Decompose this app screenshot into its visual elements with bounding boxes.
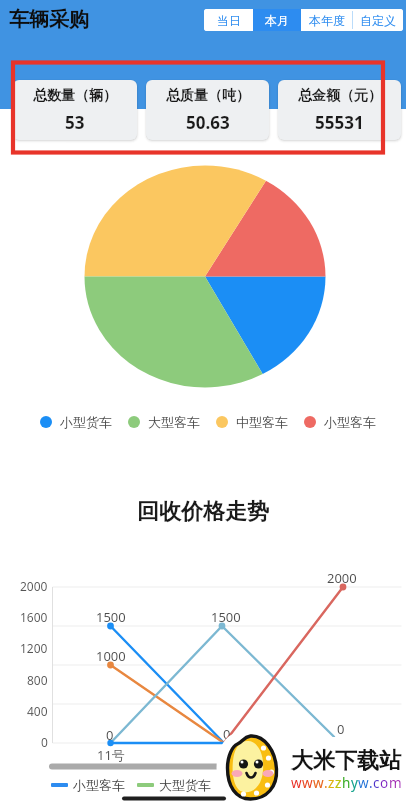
staticText: 当日 xyxy=(217,13,241,28)
staticText: 1200 xyxy=(20,640,48,656)
staticText: w xyxy=(291,774,302,792)
staticText: 回收价格走势 xyxy=(137,498,269,526)
button[interactable]: 小型客车 xyxy=(304,414,376,430)
staticText: 11号 xyxy=(97,746,125,764)
staticText: z xyxy=(335,774,342,792)
button[interactable]: 本年度 xyxy=(301,9,352,31)
staticText: 1000 xyxy=(96,647,126,665)
staticText: w xyxy=(358,774,369,792)
staticText: 50.63 xyxy=(186,111,230,134)
staticText: 本年度 xyxy=(309,13,345,28)
staticText: 总质量（吨） xyxy=(166,87,250,105)
staticText: 车辆采购 xyxy=(9,7,89,32)
staticText: o xyxy=(380,774,389,792)
staticText: . xyxy=(369,774,373,792)
button[interactable]: 大型货车 xyxy=(137,777,211,793)
staticText: 2000 xyxy=(20,578,48,594)
button[interactable]: 小型客车 xyxy=(51,777,125,793)
button[interactable]: 当日 xyxy=(204,9,253,31)
button[interactable]: 中型客车 xyxy=(216,414,288,430)
staticText: w xyxy=(302,774,313,792)
staticText: 1500 xyxy=(96,608,126,626)
staticText: 1500 xyxy=(211,608,241,626)
button[interactable]: 大型客车 xyxy=(128,414,200,430)
staticText: 中型客车 xyxy=(236,414,288,430)
staticText: . xyxy=(324,774,328,792)
button[interactable]: 总数量（辆） xyxy=(13,80,137,140)
staticText: y xyxy=(351,774,358,792)
staticText: 0 xyxy=(106,726,114,744)
staticText: 0 xyxy=(41,734,48,750)
button[interactable]: 自定义 xyxy=(352,9,403,31)
staticText: 总数量（辆） xyxy=(33,87,117,105)
staticText: 55531 xyxy=(315,111,364,134)
button[interactable]: 本月 xyxy=(253,9,301,31)
staticText: 小型客车 xyxy=(73,777,125,793)
staticText: h xyxy=(342,774,351,792)
staticText: 2000 xyxy=(327,569,357,587)
staticText: c xyxy=(373,774,380,792)
staticText: 53 xyxy=(65,111,85,134)
staticText: w xyxy=(313,774,324,792)
staticText: m xyxy=(389,774,402,792)
button[interactable]: 总金额（元） xyxy=(278,80,401,140)
staticText: 大米下载站 xyxy=(291,747,401,775)
staticText: 总金额（元） xyxy=(298,87,382,105)
button[interactable]: 车辆采购 xyxy=(9,7,89,32)
staticText: 0 xyxy=(223,725,231,743)
staticText: 小型客车 xyxy=(324,414,376,430)
button[interactable]: 小型货车 xyxy=(40,414,112,430)
staticText: 800 xyxy=(27,672,48,688)
staticText: 大型货车 xyxy=(159,777,211,793)
staticText: 1600 xyxy=(20,609,48,625)
staticText: 本月 xyxy=(265,13,289,28)
staticText: 4 xyxy=(220,746,228,764)
staticText: 0 xyxy=(337,720,345,738)
staticText: 大型客车 xyxy=(148,414,200,430)
staticText: z xyxy=(328,774,335,792)
staticText: 小型货车 xyxy=(60,414,112,430)
staticText: 自定义 xyxy=(360,13,396,28)
staticText: 400 xyxy=(27,703,48,719)
button[interactable]: 总质量（吨） xyxy=(146,80,269,140)
